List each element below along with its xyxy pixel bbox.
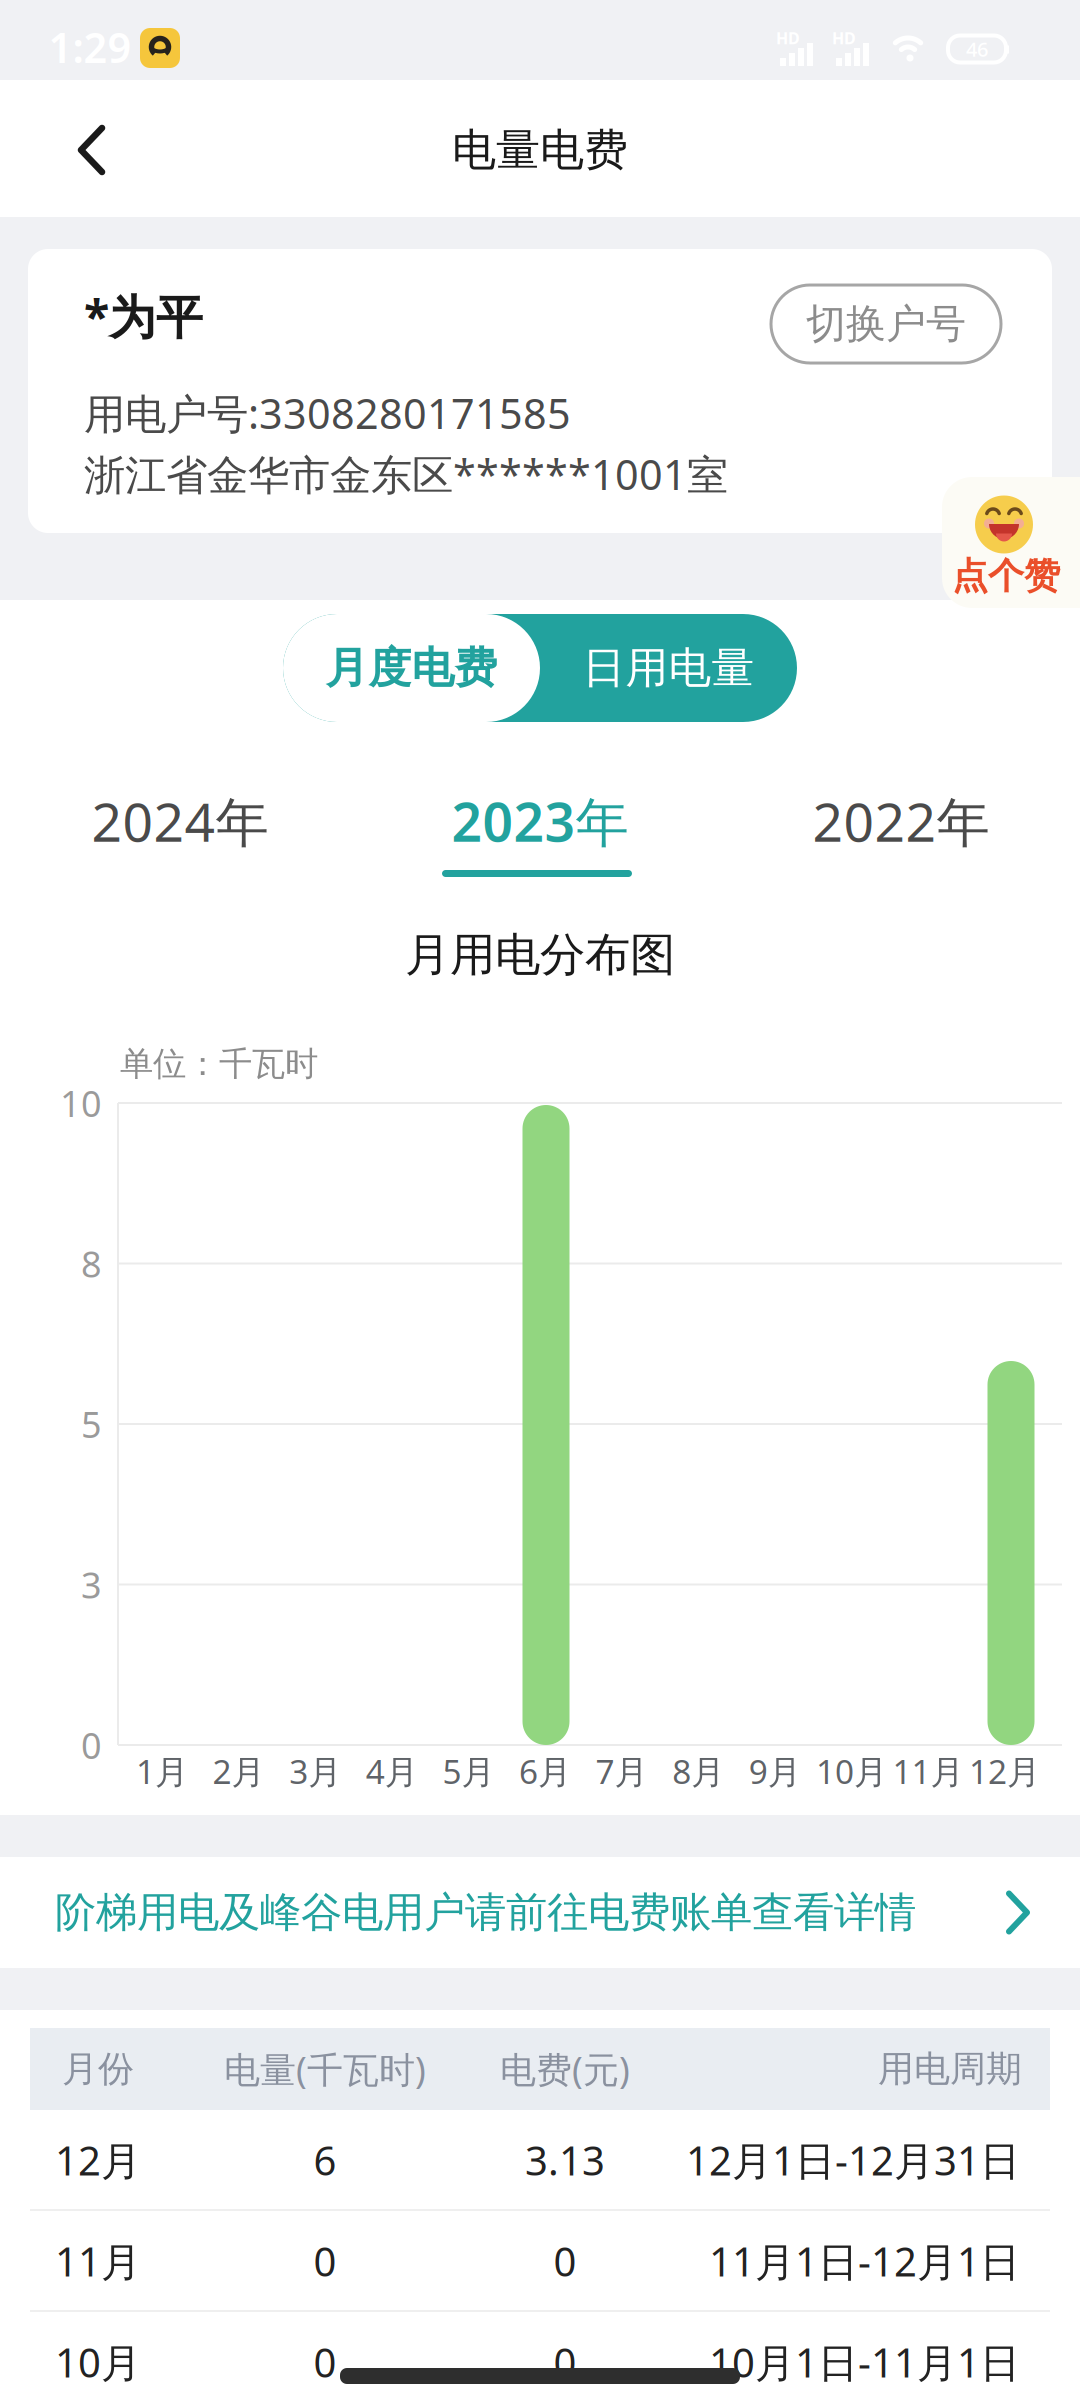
staticText: 12月 [969, 1749, 1040, 1793]
staticText: 单位：千瓦时 [120, 1043, 318, 1084]
button[interactable]: 2024年 [40, 771, 320, 871]
staticText: 6月 [519, 1749, 571, 1793]
staticText: 9月 [749, 1749, 801, 1793]
staticText: 电量电费 [452, 123, 628, 177]
staticText: 3月 [289, 1749, 341, 1793]
staticText: 0 [81, 1721, 102, 1769]
staticText: 12月1日-12月31日 [686, 2133, 1020, 2186]
staticText: 8月 [672, 1749, 724, 1793]
staticText: 日用电量 [582, 642, 754, 694]
staticText: 5月 [442, 1749, 494, 1793]
staticText: 11月1日-12月1日 [709, 2234, 1020, 2287]
staticText: 0 [553, 2335, 576, 2388]
staticText: 11月 [892, 1749, 963, 1793]
staticText: 电费(元) [500, 2045, 630, 2093]
staticText: 3 [81, 1561, 102, 1608]
staticText: 浙江省金华市金东区******1001室 [84, 447, 728, 501]
button[interactable]: 切换户号 [771, 285, 1001, 363]
staticText: 10月 [55, 2335, 141, 2388]
staticText: 切换户号 [806, 299, 966, 348]
button[interactable]: 2023年 [400, 771, 680, 871]
staticText: HD [832, 27, 856, 49]
staticText: 5 [81, 1400, 102, 1448]
staticText: 用电周期 [878, 2047, 1022, 2091]
staticText: 2022年 [812, 786, 989, 856]
staticText: 阶梯用电及峰谷电用户请前往电费账单查看详情 [55, 1887, 916, 1938]
staticText: 4月 [366, 1749, 418, 1793]
staticText: 10月1日-11月1日 [709, 2335, 1020, 2388]
button[interactable]: 阶梯用电及峰谷电用户请前往电费账单查看详情 [0, 1857, 1080, 1968]
staticText: 10月 [816, 1749, 887, 1793]
staticText: 3.13 [525, 2133, 605, 2186]
staticText: 1:29 [48, 20, 131, 74]
staticText: 点个赞 [952, 554, 1060, 598]
staticText: 月份 [62, 2047, 134, 2091]
staticText: 1月 [136, 1749, 188, 1793]
staticText: 10 [60, 1079, 102, 1127]
button[interactable]: Back [70, 119, 132, 181]
staticText: 0 [313, 2335, 336, 2388]
button[interactable]: 月度电费 [283, 614, 540, 722]
staticText: 月用电分布图 [405, 927, 675, 983]
staticText: 电量(千瓦时) [224, 2045, 426, 2093]
staticText: 月度电费 [325, 642, 497, 694]
staticText: 7月 [596, 1749, 648, 1793]
staticText: *为平 [84, 285, 203, 347]
staticText: 2月 [213, 1749, 265, 1793]
staticText: 用电户号:3308280171585 [84, 386, 571, 440]
staticText: 12月 [55, 2133, 141, 2186]
staticText: 2024年 [91, 786, 268, 856]
staticText: 11月 [55, 2234, 141, 2287]
staticText: 2023年 [451, 786, 628, 856]
staticText: HD [776, 27, 800, 49]
button[interactable]: 2022年 [761, 771, 1041, 871]
button[interactable]: 点个赞 [942, 477, 1080, 608]
staticText: 6 [313, 2133, 336, 2186]
staticText: 0 [553, 2234, 576, 2287]
staticText: 0 [313, 2234, 336, 2287]
button[interactable]: 日用电量 [540, 614, 797, 722]
staticText: 46 [966, 36, 988, 62]
staticText: 8 [81, 1240, 102, 1287]
